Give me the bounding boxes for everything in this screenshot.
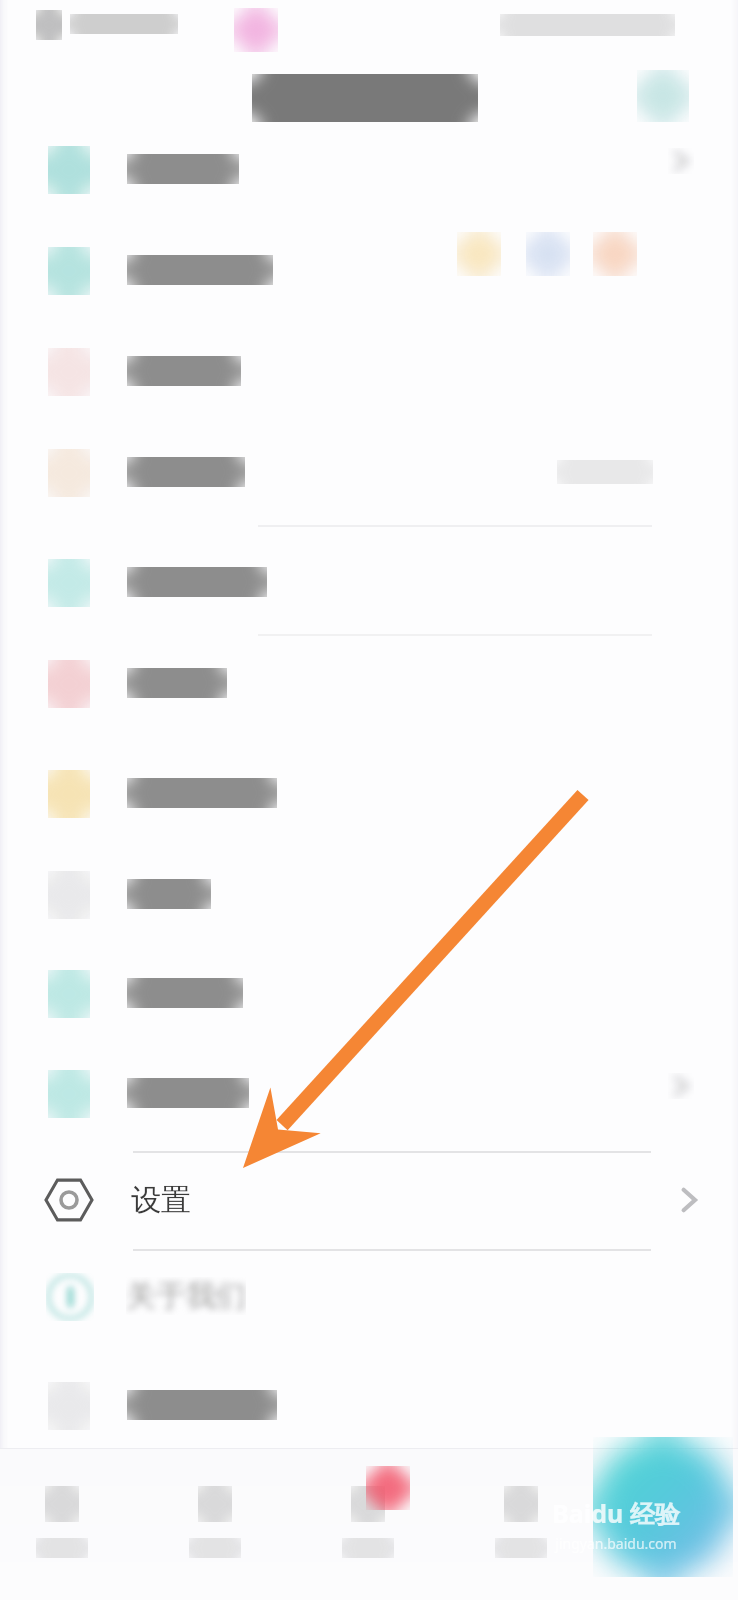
button[interactable]: Tab 1	[14, 1462, 110, 1594]
staticText: jingyan.baidu.com	[555, 1534, 677, 1553]
button[interactable]	[0, 638, 738, 739]
button[interactable]	[0, 948, 738, 1049]
button[interactable]: Tab 3	[320, 1462, 416, 1594]
button[interactable]	[0, 225, 738, 326]
button[interactable]	[0, 1360, 738, 1461]
button[interactable]	[0, 124, 738, 225]
button[interactable]	[0, 537, 738, 638]
staticText: 设置	[131, 1181, 191, 1219]
button[interactable]	[0, 326, 738, 427]
button[interactable]	[0, 427, 738, 528]
button[interactable]	[0, 1048, 738, 1149]
button[interactable]: Tab 2	[167, 1462, 263, 1594]
button[interactable]: 设置	[0, 1153, 738, 1247]
button[interactable]: 关于我们	[0, 1255, 738, 1347]
staticText: 关于我们	[126, 1277, 246, 1315]
other: Highlight	[593, 1437, 733, 1577]
button[interactable]: Tab 4	[473, 1462, 569, 1594]
staticText: Baidu 经验	[552, 1496, 680, 1530]
button[interactable]	[0, 849, 738, 950]
button[interactable]	[0, 748, 738, 849]
